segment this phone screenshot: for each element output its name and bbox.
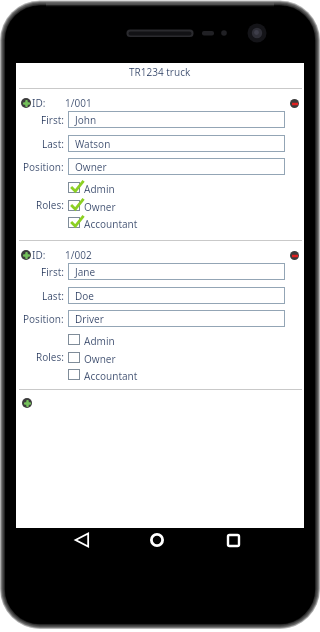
staticText: First: bbox=[41, 113, 64, 127]
staticText: Watson bbox=[75, 137, 111, 151]
button[interactable]: Back bbox=[62, 526, 102, 554]
staticText: Jane bbox=[75, 265, 96, 279]
button[interactable]: Home bbox=[137, 526, 177, 554]
button[interactable]: Add bbox=[22, 398, 32, 408]
staticText: 1/002 bbox=[65, 248, 92, 262]
staticText: Owner bbox=[75, 160, 107, 174]
staticText: Doe bbox=[75, 289, 94, 303]
staticText: Roles: bbox=[36, 198, 64, 211]
staticText: 1/001 bbox=[65, 96, 92, 110]
button[interactable]: Remove bbox=[290, 99, 299, 108]
staticText: Position: bbox=[23, 160, 64, 174]
button[interactable]: Recents bbox=[213, 526, 253, 554]
staticText: TR1234 truck bbox=[129, 65, 191, 79]
button[interactable]: Remove bbox=[290, 251, 299, 260]
staticText: Position: bbox=[23, 312, 64, 326]
staticText: Admin bbox=[84, 334, 115, 348]
button[interactable]: Accountant bbox=[68, 368, 168, 383]
staticText: Driver bbox=[75, 312, 104, 326]
staticText: Last: bbox=[42, 289, 64, 303]
staticText: Owner bbox=[84, 352, 116, 366]
button[interactable]: Add bbox=[21, 250, 31, 260]
button[interactable]: Accountant bbox=[68, 216, 168, 231]
staticText: First: bbox=[41, 265, 64, 279]
button[interactable]: Admin bbox=[68, 333, 168, 348]
staticText: Roles: bbox=[36, 350, 64, 363]
staticText: Owner bbox=[84, 200, 116, 214]
staticText: Admin bbox=[84, 182, 115, 196]
staticText: ID: bbox=[32, 96, 46, 110]
staticText: ID: bbox=[32, 248, 46, 262]
button[interactable]: Add bbox=[21, 98, 31, 108]
button[interactable]: Owner bbox=[68, 199, 168, 214]
button[interactable]: Owner bbox=[68, 351, 168, 366]
staticText: John bbox=[75, 113, 97, 127]
staticText: Accountant bbox=[84, 369, 138, 383]
staticText: Last: bbox=[42, 137, 64, 151]
button[interactable]: Admin bbox=[68, 181, 168, 196]
staticText: Accountant bbox=[84, 217, 138, 231]
